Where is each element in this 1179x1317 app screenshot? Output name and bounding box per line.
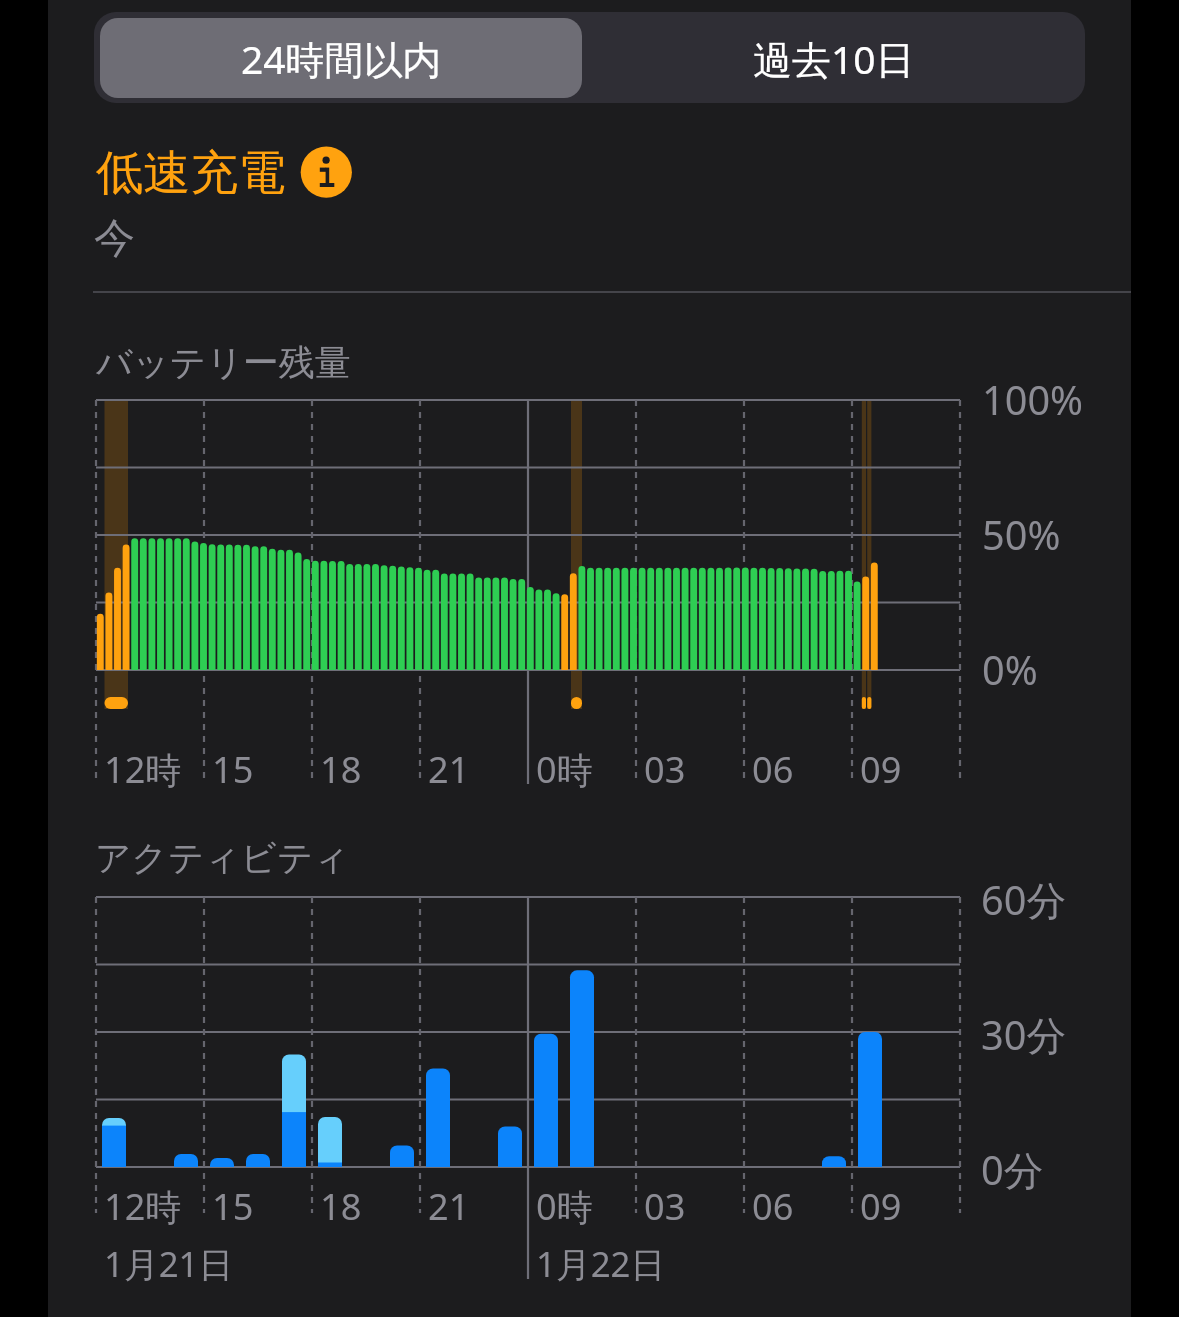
staticText: 今 (94, 213, 135, 265)
staticText: アクティビティ (95, 836, 350, 881)
staticText: 21 (428, 744, 470, 793)
staticText: 21 (428, 1181, 470, 1230)
staticText: バッテリー残量 (96, 340, 351, 385)
staticText: 0分 (981, 1143, 1044, 1197)
staticText: 06 (752, 1181, 794, 1230)
staticText: 03 (644, 744, 686, 793)
staticText: 03 (644, 1181, 686, 1230)
staticText: 過去10日 (753, 32, 915, 85)
staticText: 12時 (104, 1181, 182, 1230)
staticText: 0% (982, 643, 1038, 697)
staticText: 06 (752, 744, 794, 793)
staticText: 0時 (536, 744, 593, 793)
staticText: 12時 (104, 744, 182, 793)
button[interactable]: 低速充電について (95, 143, 352, 201)
staticText: 30分 (981, 1008, 1067, 1062)
staticText: 09 (860, 744, 902, 793)
staticText: 50% (982, 508, 1061, 562)
staticText: 24時間以内 (241, 32, 442, 85)
staticText: 低速充電 (96, 143, 286, 203)
button[interactable]: 24時間以内 (100, 18, 582, 98)
staticText: 100% (982, 373, 1084, 427)
staticText: 1月21日 (104, 1240, 234, 1288)
button[interactable]: 過去10日 (582, 18, 1085, 98)
staticText: 0時 (536, 1181, 593, 1230)
staticText: 60分 (981, 873, 1067, 927)
staticText: 09 (860, 1181, 902, 1230)
staticText: 1月22日 (536, 1240, 666, 1288)
staticText: 15 (212, 744, 254, 793)
staticText: 18 (320, 744, 362, 793)
staticText: 18 (320, 1181, 362, 1230)
staticText: 15 (212, 1181, 254, 1230)
